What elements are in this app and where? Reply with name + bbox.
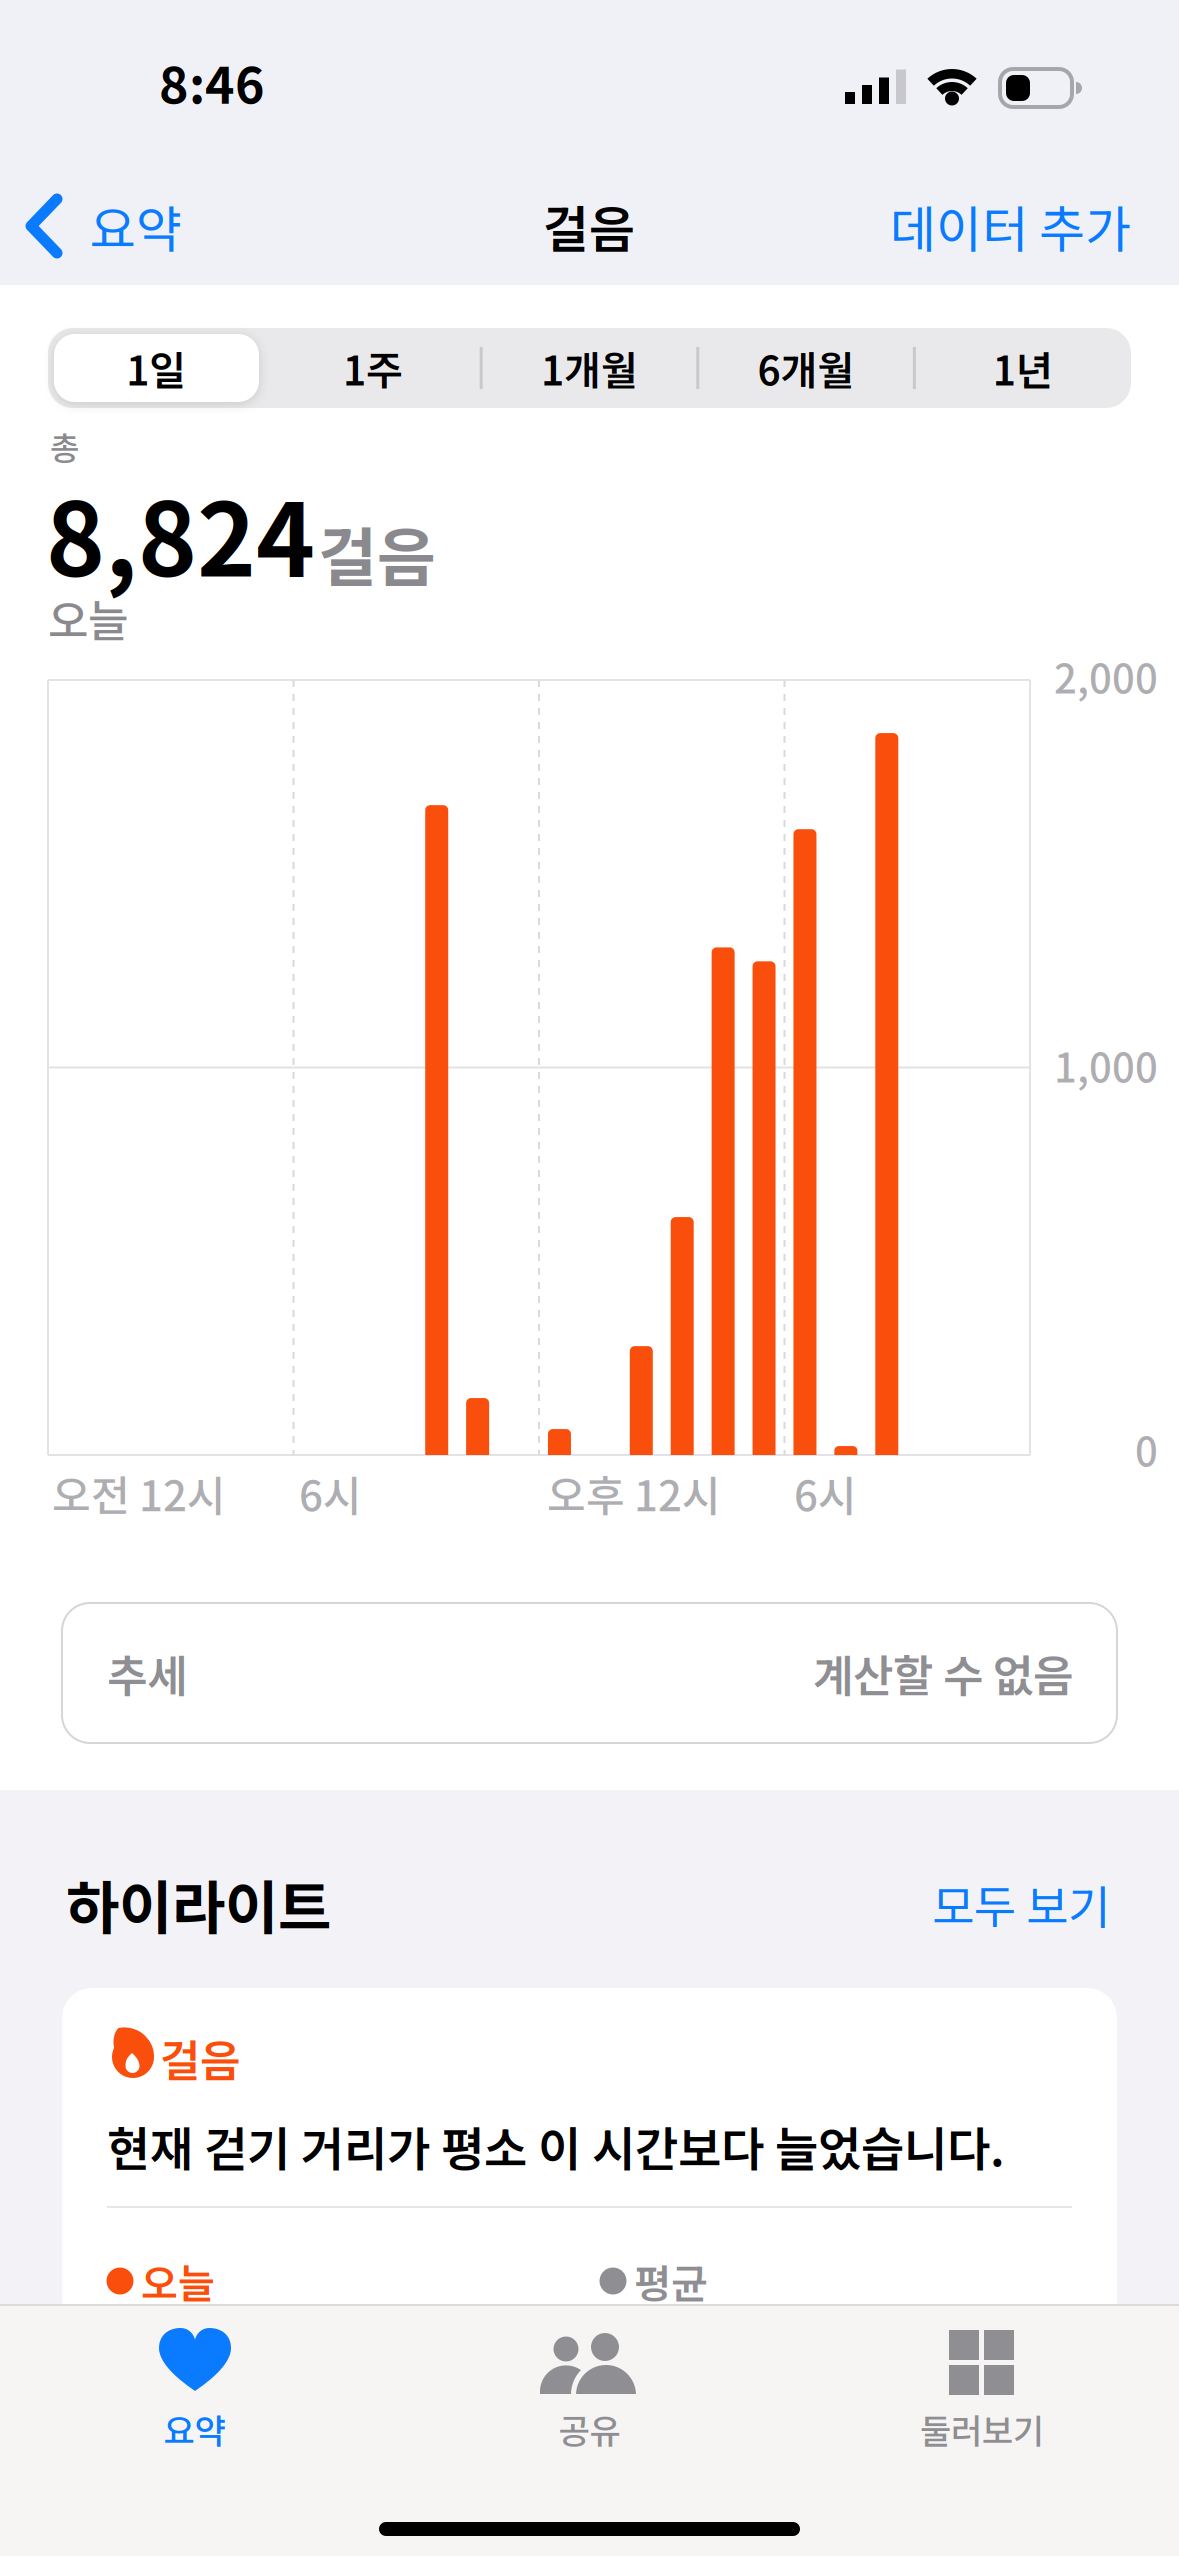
staticText: 공유 bbox=[558, 2404, 620, 2454]
staticText: 오전 12시 bbox=[52, 1463, 226, 1523]
staticText: 2,000 bbox=[1054, 647, 1158, 705]
staticText: 오후 12시 bbox=[547, 1463, 721, 1523]
button[interactable]: 뒤로, 요약 bbox=[20, 166, 270, 286]
button[interactable]: 추세 bbox=[62, 1603, 1117, 1743]
staticText: 8,824 bbox=[46, 461, 315, 605]
button[interactable]: 데이터 추가 bbox=[871, 166, 1131, 286]
staticText: 오늘 bbox=[48, 586, 128, 650]
staticText: 오늘 bbox=[141, 2252, 215, 2310]
button[interactable]: 1년 bbox=[914, 328, 1131, 408]
button[interactable]: 요약 bbox=[0, 2306, 393, 2552]
button[interactable]: 공유 bbox=[393, 2306, 786, 2552]
staticText: 둘러보기 bbox=[920, 2404, 1044, 2454]
staticText: 계산할 수 없음 bbox=[813, 1641, 1073, 1705]
staticText: 데이터 추가 bbox=[890, 190, 1131, 262]
staticText: 총 bbox=[50, 423, 79, 469]
staticText: 1주 bbox=[343, 339, 403, 397]
button[interactable]: 1개월 bbox=[481, 328, 698, 408]
staticText: 현재 걷기 거리가 평소 이 시간보다 늘었습니다. bbox=[107, 2112, 1005, 2180]
button[interactable]: 1일 bbox=[48, 328, 265, 408]
staticText: 걸음 bbox=[318, 507, 436, 599]
staticText: 8:46 bbox=[159, 46, 265, 118]
staticText: 요약 bbox=[163, 2404, 225, 2454]
staticText: 6시 bbox=[299, 1463, 362, 1523]
staticText: 요약 bbox=[90, 190, 182, 262]
staticText: 하이라이트 bbox=[66, 1862, 331, 1946]
staticText: 6개월 bbox=[758, 339, 855, 397]
button[interactable]: 1주 bbox=[265, 328, 481, 408]
staticText: 걸음 bbox=[543, 190, 635, 262]
staticText: 모두 보기 bbox=[932, 1871, 1110, 1937]
staticText: 평균 bbox=[634, 2252, 708, 2310]
button[interactable]: 모두 보기 bbox=[870, 1859, 1110, 1949]
staticText: 1년 bbox=[993, 339, 1053, 397]
staticText: 1일 bbox=[126, 339, 186, 397]
staticText: 1,000 bbox=[1054, 1036, 1158, 1094]
staticText: 0 bbox=[1135, 1420, 1158, 1478]
staticText: 1개월 bbox=[541, 339, 638, 397]
staticText: 걸음 bbox=[160, 2026, 240, 2090]
staticText: 추세 bbox=[107, 1641, 187, 1705]
button[interactable]: 6개월 bbox=[698, 328, 914, 408]
button[interactable]: 걸음 bbox=[62, 1988, 1117, 2468]
button[interactable]: 둘러보기 bbox=[786, 2306, 1179, 2552]
staticText: 6시 bbox=[794, 1463, 857, 1523]
